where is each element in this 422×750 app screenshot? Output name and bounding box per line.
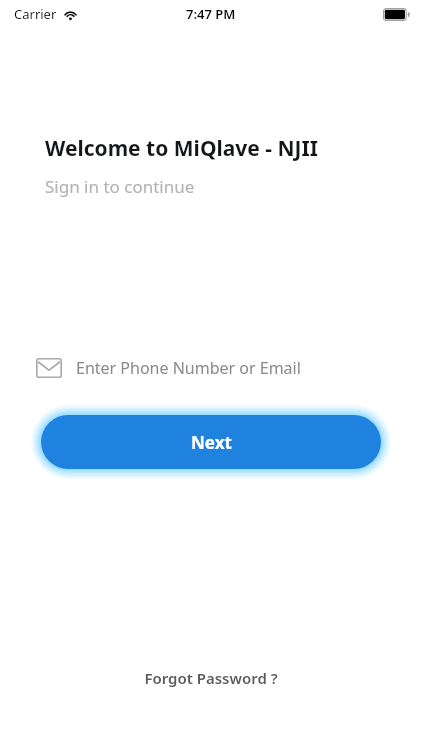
button[interactable]: Email — [36, 348, 386, 388]
staticText: Next — [191, 431, 232, 454]
staticText: Sign in to continue — [45, 175, 195, 198]
other: Email — [36, 358, 62, 378]
other: Wi-Fi — [63, 9, 78, 20]
staticText: Forgot Password ? — [144, 668, 278, 688]
button[interactable]: Forgot Password ? — [128, 664, 294, 692]
staticText: Enter Phone Number or Email — [76, 357, 301, 379]
other: Battery full — [383, 8, 410, 21]
staticText: Carrier — [14, 5, 57, 23]
staticText: Welcome to MiQlave - NJII — [45, 134, 318, 163]
button[interactable]: Next — [41, 415, 381, 469]
staticText: 7:47 PM — [186, 5, 236, 23]
